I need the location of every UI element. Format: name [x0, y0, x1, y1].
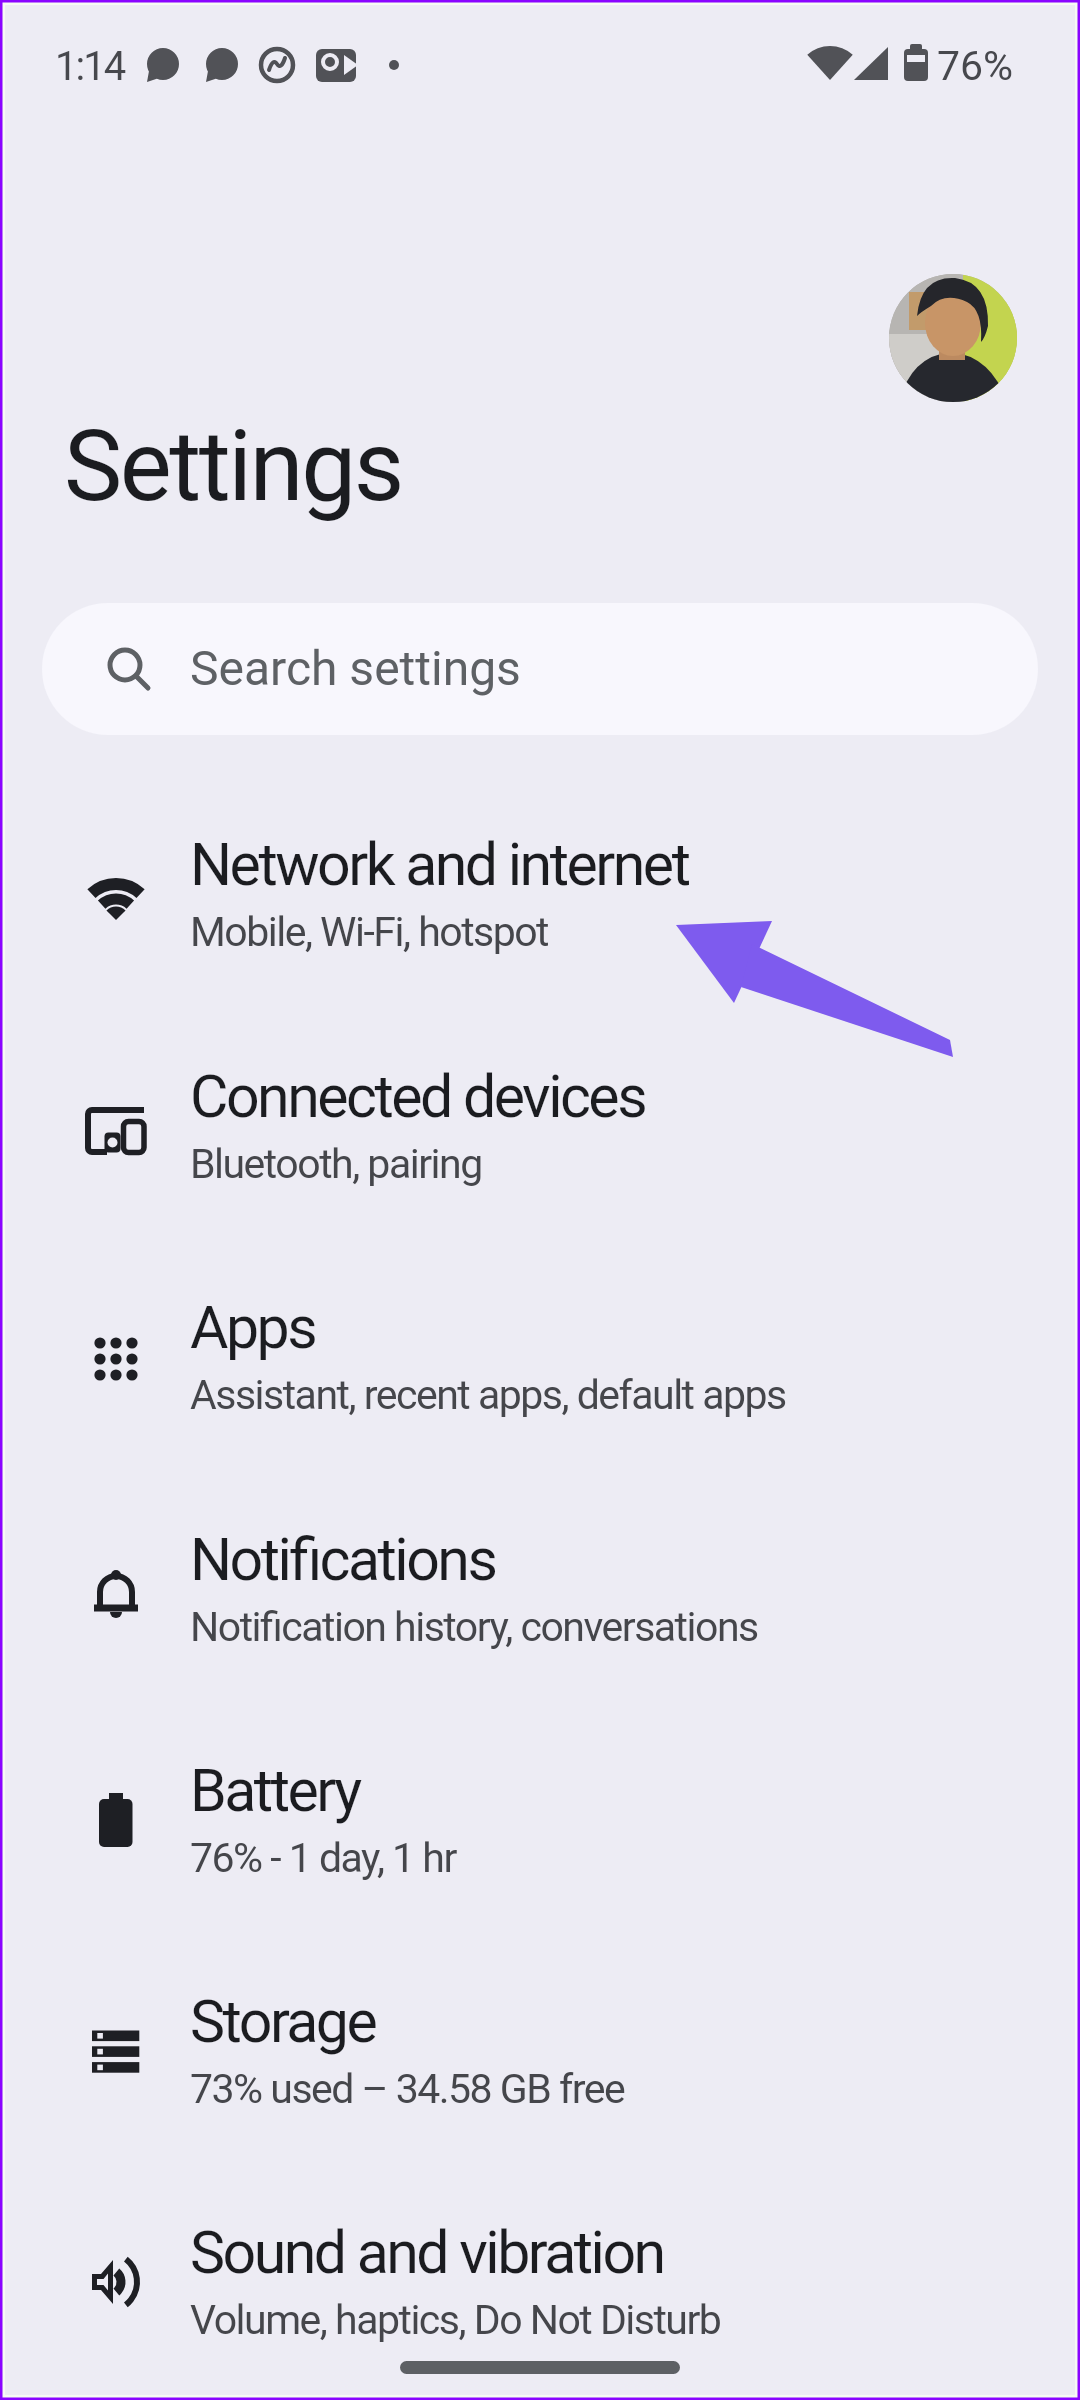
staticText: 73% used – 34.58 GB free: [190, 2065, 625, 2113]
staticText: Bluetooth, pairing: [190, 1140, 482, 1188]
staticText: 76% - 1 day, 1 hr: [190, 1834, 456, 1882]
staticText: Battery: [190, 1756, 360, 1825]
staticText: Notification history, conversations: [190, 1603, 758, 1651]
staticText: Connected devices: [190, 1062, 646, 1131]
staticText: Apps: [190, 1293, 316, 1362]
button[interactable]: [889, 274, 1017, 402]
button[interactable]: Notifications: [0, 1448, 1080, 1676]
staticText: Volume, haptics, Do Not Disturb: [190, 2296, 721, 2344]
staticText: Sound and vibration: [190, 2218, 664, 2287]
staticText: Search settings: [190, 640, 521, 696]
button[interactable]: Network and internet: [0, 753, 1080, 981]
button[interactable]: Connected devices: [0, 985, 1080, 1213]
staticText: 1:14: [55, 43, 125, 90]
staticText: Notifications: [190, 1525, 496, 1594]
button[interactable]: Sound and vibration: [0, 2141, 1080, 2369]
button[interactable]: Search settings: [42, 603, 1038, 735]
staticText: Network and internet: [190, 830, 689, 899]
staticText: 76%: [937, 42, 1014, 90]
staticText: Mobile, Wi-Fi, hotspot: [190, 908, 549, 956]
button[interactable]: Battery: [0, 1679, 1080, 1907]
staticText: Settings: [64, 409, 402, 524]
button[interactable]: Apps: [0, 1216, 1080, 1444]
button[interactable]: Storage: [0, 1910, 1080, 2138]
staticText: Assistant, recent apps, default apps: [190, 1371, 786, 1419]
staticText: Storage: [190, 1987, 376, 2056]
